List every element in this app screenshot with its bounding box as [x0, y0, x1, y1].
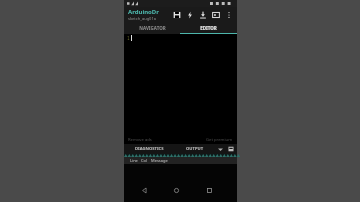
- staticText: NAVIGATOR: [139, 25, 166, 31]
- button[interactable]: Remove ads: [128, 137, 152, 143]
- button[interactable]: Get premium: [206, 137, 233, 143]
- staticText: ArduinoDroid: [128, 8, 162, 16]
- button[interactable]: Resize panel: [124, 154, 237, 157]
- staticText: OUTPUT: [186, 146, 204, 152]
- button[interactable]: Save: [170, 7, 183, 22]
- button[interactable]: EDITOR: [180, 22, 237, 34]
- staticText: Message: [151, 158, 168, 163]
- button[interactable]: More options: [222, 7, 235, 22]
- button[interactable]: Select: [215, 144, 225, 154]
- button[interactable]: OUTPUT: [175, 144, 215, 154]
- staticText: Col: [141, 158, 147, 163]
- button[interactable]: Compile: [183, 7, 196, 22]
- button[interactable]: Recent apps: [197, 178, 221, 202]
- button[interactable]: Terminal: [209, 7, 222, 22]
- staticText: 1: [127, 35, 130, 41]
- staticText: sketch_aug01a: [128, 16, 156, 21]
- staticText: Get premium: [206, 137, 233, 143]
- staticText: EDITOR: [200, 25, 217, 31]
- button[interactable]: Back: [132, 178, 156, 202]
- button[interactable]: NAVIGATOR: [124, 22, 180, 34]
- button[interactable]: DIAGNOSTICS: [124, 144, 175, 154]
- staticText: DIAGNOSTICS: [135, 146, 164, 152]
- button[interactable]: Home: [164, 178, 188, 202]
- button[interactable]: Upload: [196, 7, 209, 22]
- button[interactable]: Clear output: [225, 144, 236, 154]
- staticText: Remove ads: [128, 137, 152, 143]
- staticText: Line: [130, 158, 138, 163]
